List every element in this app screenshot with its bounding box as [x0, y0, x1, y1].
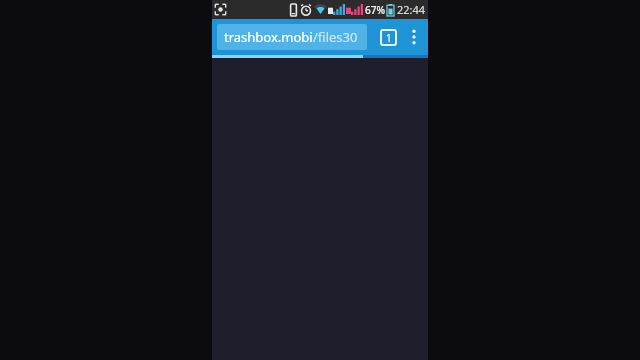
staticText: /files30 — [313, 28, 358, 46]
staticText: 22:44 — [397, 2, 426, 17]
button[interactable]: More options — [403, 22, 425, 52]
staticText: 1 — [386, 31, 392, 45]
staticText: trashbox.mobi — [224, 28, 313, 46]
button[interactable]: Tabs, 1 open — [375, 22, 401, 52]
button[interactable]: trashbox.mobi — [217, 24, 367, 50]
staticText: 67% — [365, 3, 385, 17]
